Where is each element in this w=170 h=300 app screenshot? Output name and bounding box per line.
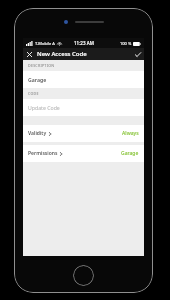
staticText: CODE xyxy=(28,91,39,96)
staticText: Permissions xyxy=(28,150,58,157)
button[interactable]: Home xyxy=(73,265,94,286)
button[interactable]: Update Code xyxy=(23,99,144,116)
staticText: T-Mobile A xyxy=(35,41,55,46)
button[interactable]: Close xyxy=(23,48,36,60)
staticText: Garage xyxy=(121,150,139,157)
staticText: Update Code xyxy=(28,104,60,111)
staticText: New Access Code xyxy=(37,50,87,58)
staticText: 100 % xyxy=(120,41,132,46)
staticText: Validity xyxy=(28,130,47,137)
button[interactable]: Validity xyxy=(23,125,144,142)
staticText: 11:23 AM xyxy=(74,40,94,46)
staticText: Always xyxy=(122,130,139,137)
button[interactable]: Garage xyxy=(23,71,144,88)
button[interactable]: Permissions xyxy=(23,145,144,162)
staticText: Garage xyxy=(28,76,47,83)
button[interactable]: Save xyxy=(131,48,144,60)
staticText: DESCRIPTION xyxy=(28,63,55,68)
